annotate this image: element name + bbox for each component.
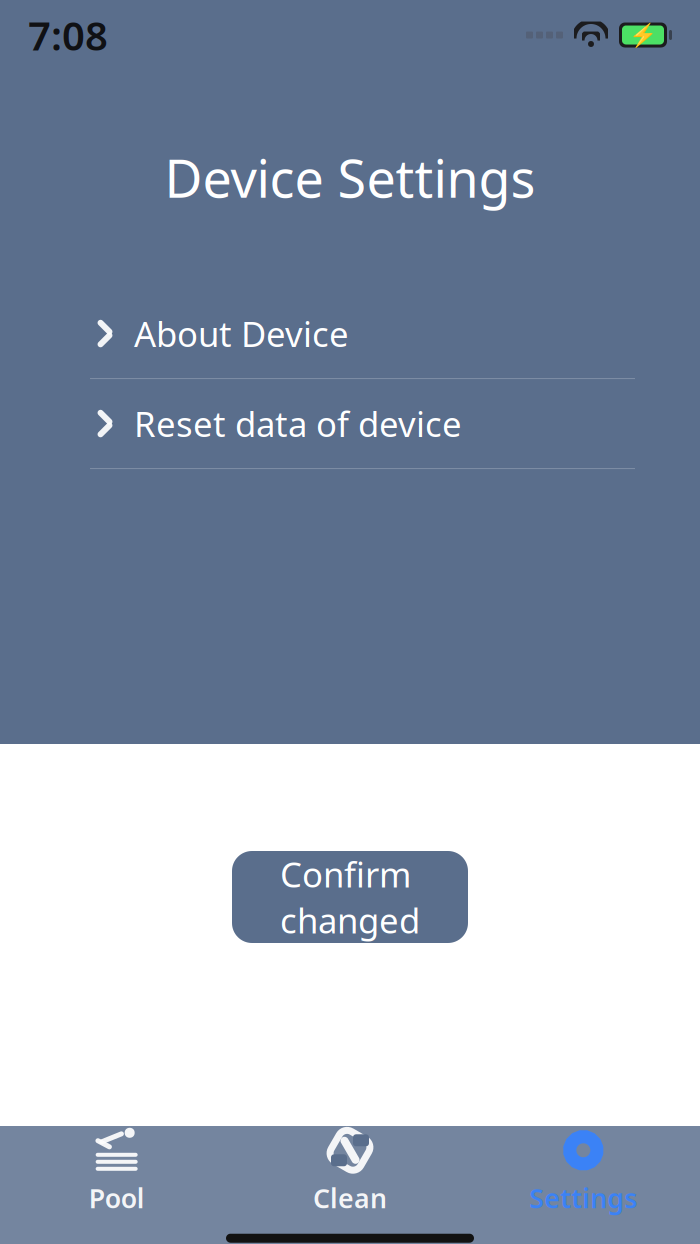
staticText: Reset data of device xyxy=(134,400,462,446)
button[interactable]: Settings xyxy=(467,1114,700,1226)
button[interactable]: About Device xyxy=(0,289,700,379)
button[interactable]: Reset data of device xyxy=(0,379,700,469)
button[interactable]: Confirm changed xyxy=(232,851,468,943)
staticText: Clean xyxy=(313,1180,387,1216)
staticText: Settings xyxy=(529,1180,637,1216)
staticText: Confirm changed xyxy=(280,851,420,943)
staticText: 7:08 xyxy=(28,8,108,61)
staticText: Device Settings xyxy=(164,143,535,212)
staticText: Pool xyxy=(89,1180,145,1216)
button[interactable]: Clean xyxy=(233,1114,467,1226)
staticText: ⚡ xyxy=(629,22,657,48)
staticText: About Device xyxy=(134,310,349,356)
button[interactable]: Pool xyxy=(0,1114,233,1226)
